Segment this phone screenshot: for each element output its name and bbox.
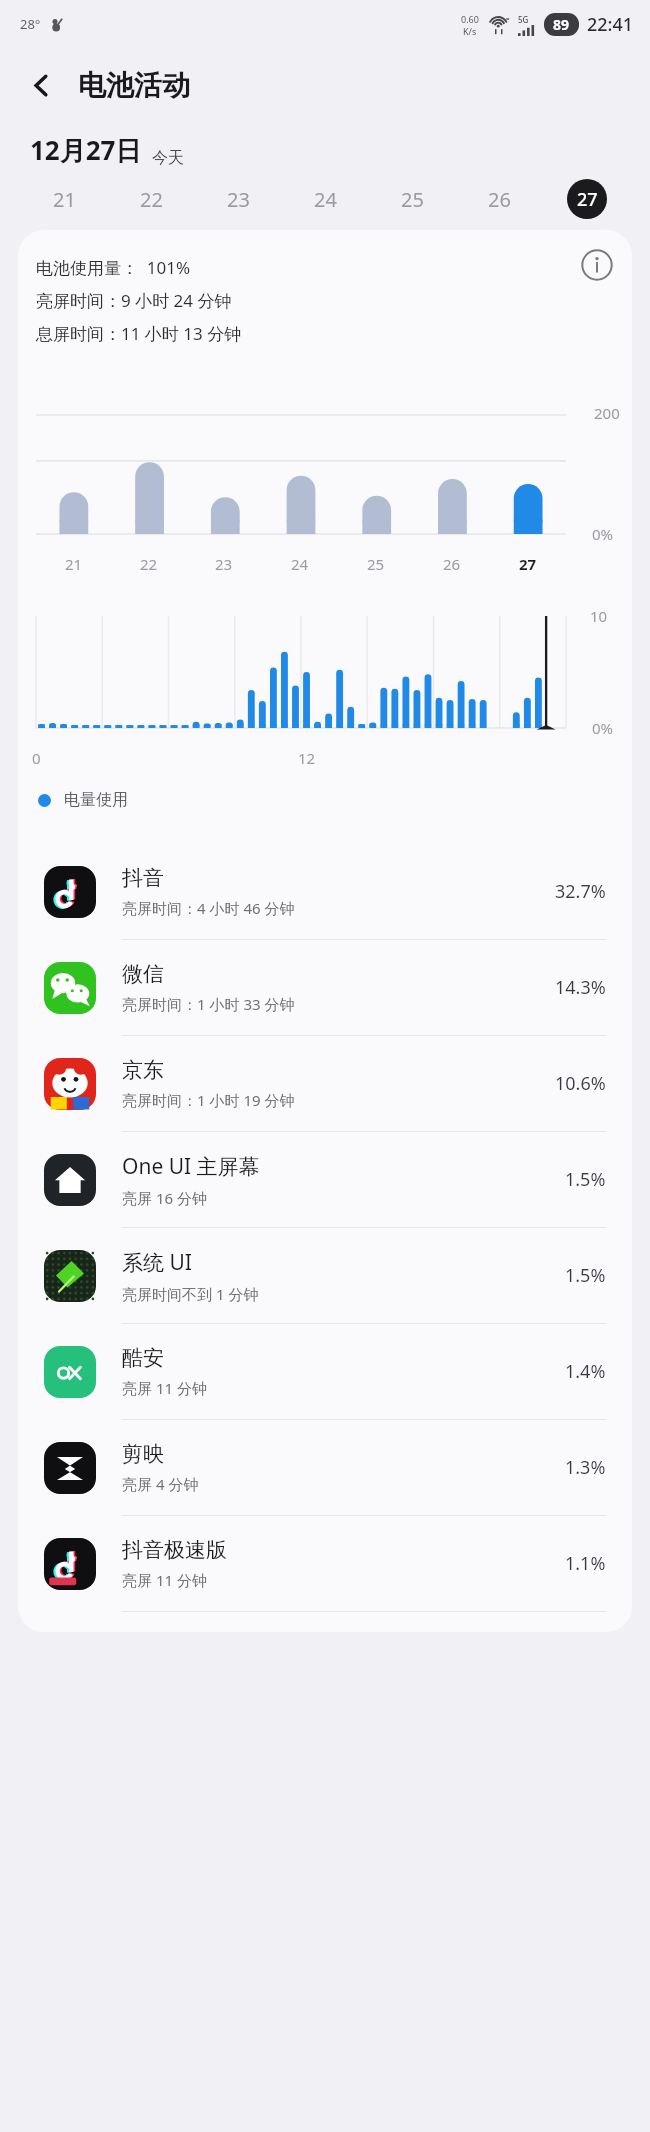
staticText: 今天 — [152, 148, 184, 168]
button[interactable]: 27 — [543, 168, 630, 230]
button[interactable]: One UI 主屏幕 — [18, 1132, 632, 1227]
button[interactable]: 26 — [456, 168, 543, 230]
staticText: 亮屏 16 分钟 — [122, 1188, 207, 1208]
staticText: 系统 UI — [122, 1248, 192, 1277]
staticText: 25 — [367, 554, 385, 574]
staticText: 200 — [594, 403, 620, 423]
staticText: 电量使用 — [64, 790, 128, 810]
staticText: 27 — [577, 187, 598, 212]
staticText: 23 — [215, 554, 233, 574]
staticText: 亮屏时间不到 1 分钟 — [122, 1284, 259, 1304]
staticText: 10 — [590, 606, 608, 626]
staticText: 23 — [227, 186, 250, 213]
staticText: 1.5% — [565, 1263, 606, 1288]
button[interactable]: Information — [574, 242, 620, 288]
button[interactable]: 京东 — [18, 1036, 632, 1131]
staticText: 亮屏 11 分钟 — [122, 1378, 207, 1398]
staticText: 22 — [140, 186, 163, 213]
staticText: 亮屏 4 分钟 — [122, 1474, 199, 1494]
staticText: 京东 — [122, 1057, 164, 1083]
staticText: 89 — [553, 15, 570, 34]
staticText: K/s — [463, 25, 477, 37]
button[interactable]: 抖音 — [18, 844, 632, 939]
button[interactable]: 24 — [282, 168, 369, 230]
button[interactable]: 系统 UI — [18, 1228, 632, 1323]
staticText: 亮屏时间：4 小时 46 分钟 — [122, 898, 295, 918]
staticText: 26 — [488, 186, 511, 213]
staticText: One UI 主屏幕 — [122, 1152, 260, 1181]
staticText: 0% — [592, 524, 614, 544]
staticText: 电池活动 — [78, 68, 190, 103]
staticText: 28° — [20, 15, 41, 33]
staticText: 24 — [314, 186, 337, 213]
staticText: 1.1% — [565, 1551, 606, 1576]
staticText: 1.4% — [565, 1359, 606, 1384]
staticText: 22 — [140, 554, 158, 574]
staticText: 亮屏时间：1 小时 19 分钟 — [122, 1090, 295, 1110]
button[interactable]: 23 — [195, 168, 282, 230]
staticText: 22:41 — [587, 12, 634, 37]
staticText: 14.3% — [555, 975, 606, 1000]
staticText: 1.3% — [565, 1455, 606, 1480]
button[interactable]: 25 — [369, 168, 456, 230]
staticText: 微信 — [122, 961, 164, 987]
staticText: 亮屏时间：9 小时 24 分钟 — [36, 289, 232, 312]
staticText: 12月27日 — [30, 132, 142, 168]
staticText: 24 — [291, 554, 309, 574]
staticText: 0.60 — [461, 13, 479, 25]
staticText: 26 — [443, 554, 461, 574]
staticText: 0% — [592, 718, 614, 738]
staticText: 10.6% — [555, 1071, 606, 1096]
button[interactable]: 酷安 — [18, 1324, 632, 1419]
staticText: 酷安 — [122, 1345, 164, 1371]
staticText: 21 — [65, 554, 83, 574]
staticText: 抖音 — [122, 865, 164, 891]
staticText: 1.5% — [565, 1167, 606, 1192]
staticText: 剪映 — [122, 1441, 164, 1467]
staticText: 5G — [518, 14, 529, 25]
staticText: 0 — [32, 748, 41, 768]
staticText: 12 — [298, 748, 316, 768]
button[interactable]: 剪映 — [18, 1420, 632, 1515]
staticText: 亮屏时间：1 小时 33 分钟 — [122, 994, 295, 1014]
button[interactable]: Back — [16, 60, 66, 110]
staticText: 亮屏 11 分钟 — [122, 1570, 207, 1590]
button[interactable]: 微信 — [18, 940, 632, 1035]
staticText: 电池使用量： 101% — [36, 256, 191, 279]
staticText: 27 — [519, 554, 537, 574]
button[interactable]: 抖音极速版 — [18, 1516, 632, 1611]
staticText: 32.7% — [555, 879, 606, 904]
button[interactable]: 22 — [108, 168, 195, 230]
staticText: 21 — [53, 186, 76, 213]
staticText: 抖音极速版 — [122, 1537, 227, 1563]
staticText: 息屏时间：11 小时 13 分钟 — [36, 322, 242, 345]
staticText: 25 — [401, 186, 424, 213]
button[interactable]: 21 — [20, 168, 108, 230]
